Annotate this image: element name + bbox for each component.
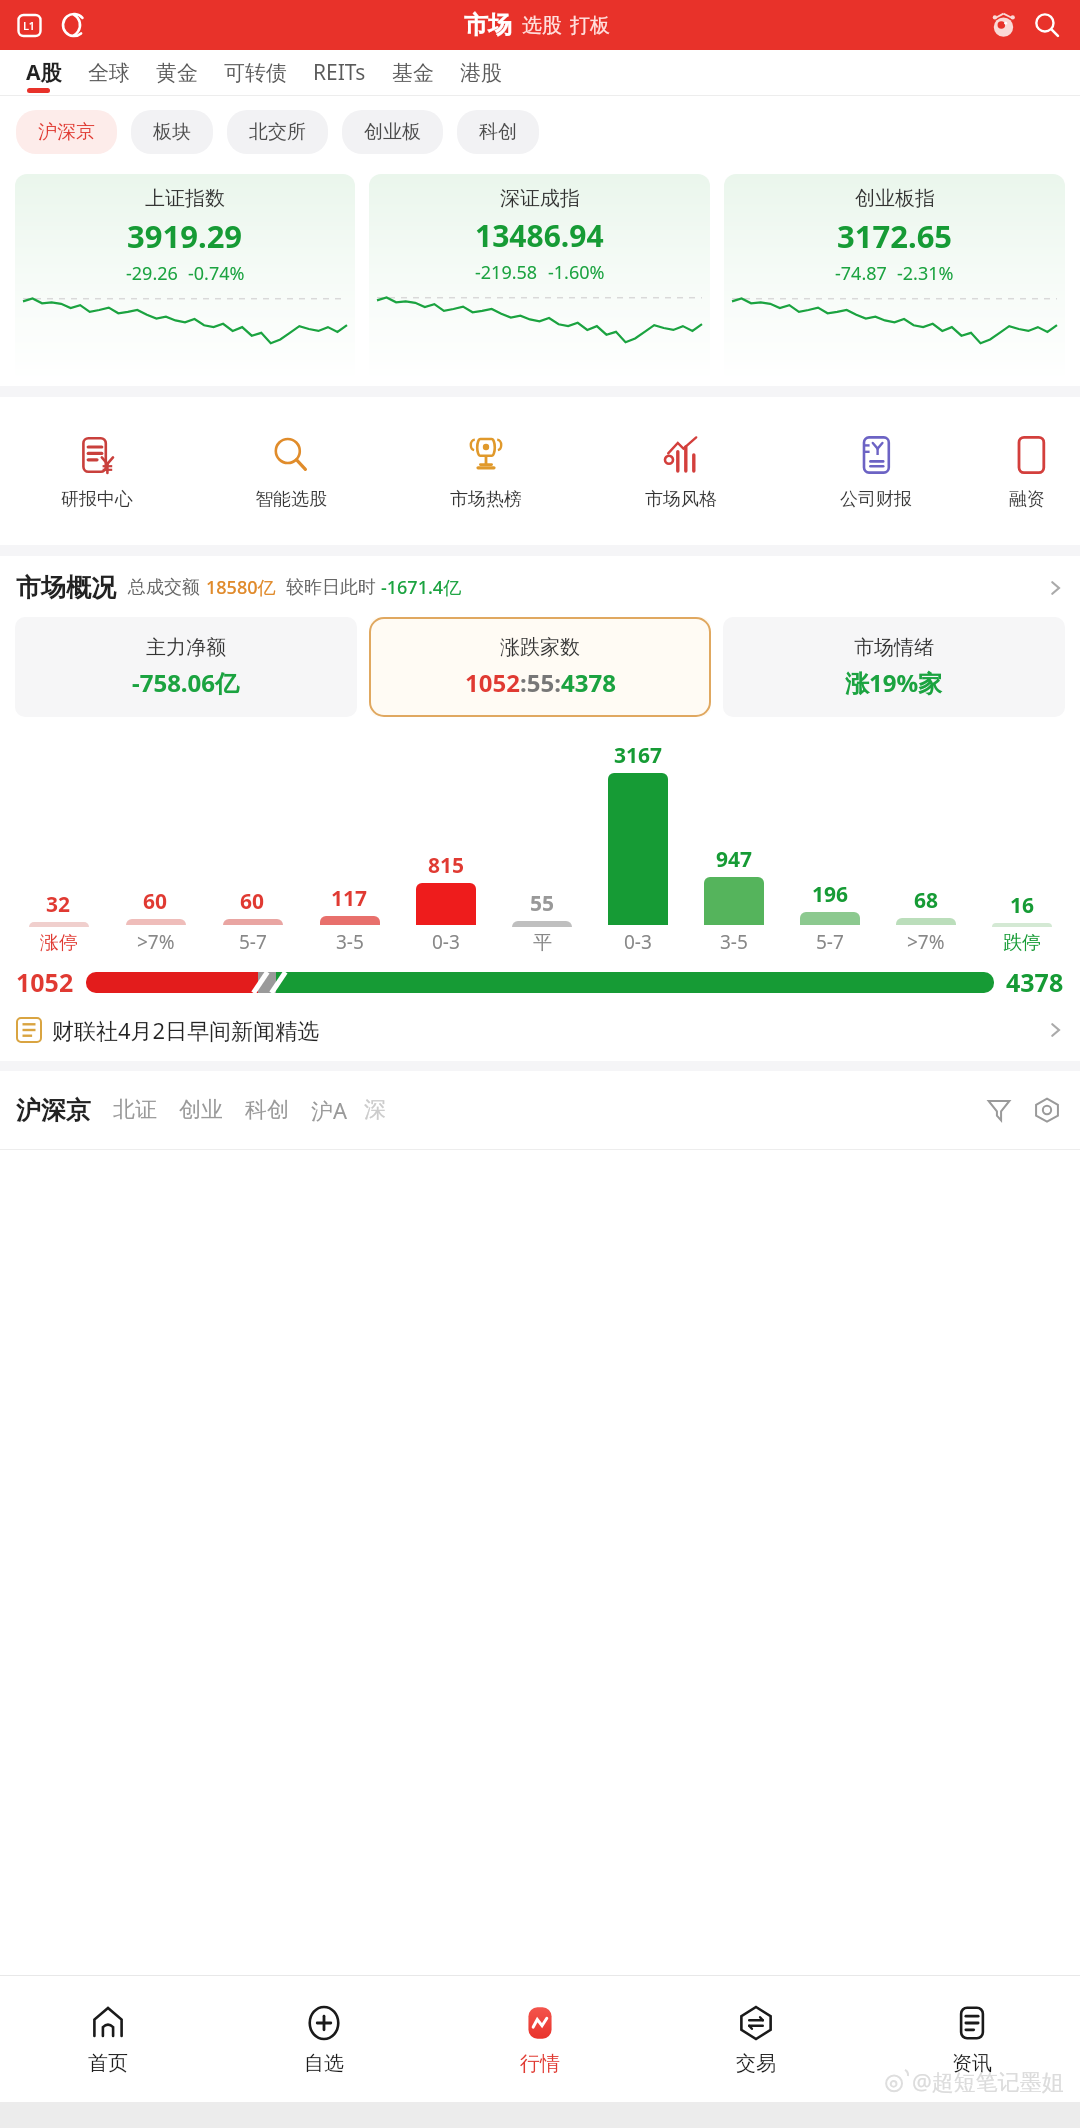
button[interactable]: 沪A [311,1095,348,1125]
staticText: 基金 [392,60,434,86]
button[interactable]: 自选 [216,1976,432,2102]
button[interactable]: 选股 [522,13,562,40]
staticText: 黄金 [156,60,198,86]
staticText: -1.60% [548,260,605,285]
staticText: 上证指数 [145,186,225,211]
button[interactable]: 科创 [245,1096,289,1124]
staticText: 涨停 [40,931,78,955]
staticText: 板块 [153,120,191,144]
button[interactable]: 市场热榜 [388,397,583,545]
button[interactable]: Filter [982,1093,1016,1127]
button[interactable]: 市场 [464,10,512,40]
button[interactable]: 深证成指 [369,174,710,382]
staticText: >7% [137,929,175,955]
staticText: 港股 [460,60,502,86]
staticText: 总成交额 [128,576,200,599]
button[interactable]: 科创 [457,110,539,154]
staticText: 沪深京 [38,120,95,144]
button[interactable]: 可转债 [214,50,297,95]
button[interactable]: 市场情绪 [723,617,1065,717]
button[interactable]: 主力净额 [15,617,357,717]
button[interactable]: 研报中心 [0,397,194,545]
staticText: 可转债 [224,60,287,86]
staticText: 16 [1010,891,1035,920]
button[interactable]: 涨跌家数 [369,617,711,717]
staticText: 科创 [479,120,517,144]
button[interactable]: 打板 [570,13,610,40]
staticText: >7% [907,929,945,955]
staticText: 4378 [561,666,616,699]
staticText: 5-7 [239,929,267,955]
button[interactable]: 基金 [382,50,444,95]
button[interactable]: 黄金 [146,50,208,95]
staticText: 5-7 [816,929,844,955]
staticText: A股 [26,58,62,87]
button[interactable]: 北证 [113,1096,157,1124]
staticText: 3919.29 [127,215,243,257]
button[interactable]: Night mode [59,10,89,40]
staticText: 涨跌家数 [500,635,580,660]
staticText: 融资 [1009,488,1045,511]
button[interactable]: 港股 [450,50,512,95]
button[interactable]: 融资 [973,397,1080,545]
button[interactable]: 北交所 [227,110,328,154]
staticText: 0-3 [624,929,652,955]
staticText: 60 [240,887,265,916]
staticText: -1671.4亿 [381,575,462,600]
staticText: 研报中心 [61,488,133,511]
button[interactable]: 行情 [432,1976,648,2102]
button[interactable]: 市场风格 [583,397,778,545]
staticText: @超短笔记墨姐 [912,2066,1064,2096]
staticText: 3-5 [720,929,748,955]
staticText: 财联社4月2日早间新闻精选 [52,1015,320,1045]
button[interactable]: Level 1 quote [16,12,43,39]
staticText: 1052 [16,965,74,999]
staticText: 815 [428,851,465,880]
button[interactable]: 公司财报 [778,397,973,545]
staticText: 深 [364,1096,378,1124]
staticText: 深证成指 [500,186,580,211]
button[interactable]: 市场概况 [0,572,1080,603]
button[interactable]: 沪深京 [16,1095,91,1126]
staticText: 0-3 [432,929,460,955]
button[interactable]: 首页 [0,1976,216,2102]
staticText: 13486.94 [475,215,604,256]
staticText: -758.06亿 [132,666,240,699]
staticText: 创业板 [364,120,421,144]
button[interactable]: 沪深京 [16,110,117,154]
button[interactable]: 交易 [648,1976,864,2102]
staticText: 市场热榜 [450,488,522,511]
button[interactable]: Assistant [986,8,1020,42]
staticText: 947 [716,845,753,874]
button[interactable]: A股 [16,50,72,95]
button[interactable]: 财联社4月2日早间新闻精选 [0,1015,1080,1045]
staticText: 行情 [520,2051,560,2076]
button[interactable]: 创业 [179,1096,223,1124]
button[interactable]: 全球 [78,50,140,95]
button[interactable]: Settings [1030,1093,1064,1127]
staticText: 196 [812,880,849,909]
staticText: 首页 [88,2051,128,2076]
staticText: 18580亿 [206,575,276,600]
staticText: 市场风格 [645,488,717,511]
staticText: 市场概况 [16,572,116,603]
staticText: 市场情绪 [854,635,934,660]
button[interactable]: 创业板指 [724,174,1065,382]
staticText: 北交所 [249,120,306,144]
button[interactable]: 创业板 [342,110,443,154]
button[interactable]: 智能选股 [194,397,388,545]
staticText: 资讯 [952,2051,992,2076]
button[interactable]: Search [1030,8,1064,42]
staticText: -74.87 [835,261,887,286]
staticText: 平 [533,931,552,955]
staticText: 3172.65 [837,215,953,257]
staticText: 创业板指 [855,186,935,211]
staticText: 55 [530,889,555,918]
button[interactable]: 上证指数 [15,174,355,382]
button[interactable]: 板块 [131,110,213,154]
staticText: 3167 [614,741,663,770]
button[interactable]: REITs [303,50,376,95]
button[interactable]: 资讯 [864,1976,1080,2102]
staticText: -219.58 [475,260,538,285]
staticText: 主力净额 [146,635,226,660]
